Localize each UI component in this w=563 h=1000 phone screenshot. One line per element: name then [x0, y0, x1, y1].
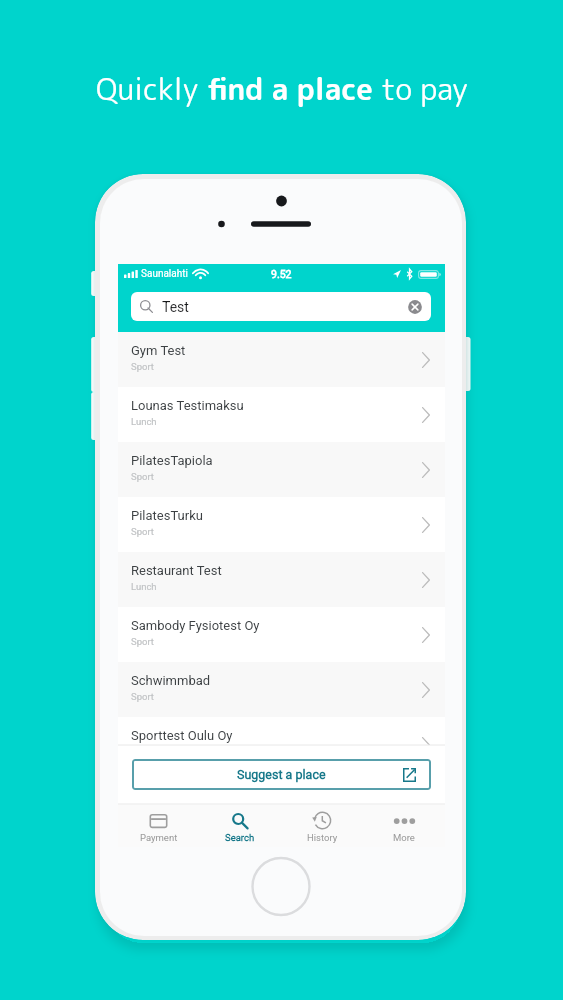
staticText: 9.52: [271, 268, 292, 280]
staticText: Test: [162, 299, 189, 315]
staticText: Sport: [131, 361, 154, 372]
staticText: Sambody Fysiotest Oy: [131, 618, 260, 633]
button[interactable]: More: [363, 805, 445, 847]
button[interactable]: Search: [199, 805, 281, 847]
staticText: Saunalahti: [141, 268, 188, 280]
staticText: to pay: [373, 68, 468, 109]
button[interactable]: Clear search: [407, 299, 423, 315]
button[interactable]: Lounas Testimaksu: [118, 387, 445, 442]
button[interactable]: Schwimmbad: [118, 662, 445, 717]
staticText: Gym Test: [131, 343, 186, 358]
staticText: PilatesTurku: [131, 508, 203, 523]
staticText: find a place: [207, 68, 373, 109]
staticText: Quickly: [96, 68, 207, 109]
staticText: Sport: [131, 691, 154, 702]
staticText: Payment: [140, 832, 178, 843]
staticText: Sport: [131, 471, 154, 482]
staticText: PilatesTapiola: [131, 453, 213, 468]
staticText: Sport: [131, 526, 154, 537]
button[interactable]: Sporttest Oulu Oy: [118, 717, 445, 745]
button[interactable]: Suggest a place: [132, 759, 431, 790]
staticText: Lunch: [131, 416, 157, 427]
button[interactable]: History: [281, 805, 363, 847]
staticText: Sporttest Oulu Oy: [131, 728, 233, 743]
staticText: Restaurant Test: [131, 563, 222, 578]
staticText: More: [393, 832, 415, 843]
button[interactable]: PilatesTapiola: [118, 442, 445, 497]
button[interactable]: Test: [131, 292, 431, 321]
staticText: Lunch: [131, 581, 157, 592]
button[interactable]: Payment: [118, 805, 199, 847]
staticText: History: [307, 832, 338, 843]
staticText: Search: [225, 832, 255, 843]
button[interactable]: PilatesTurku: [118, 497, 445, 552]
button[interactable]: Gym Test: [118, 332, 445, 387]
button[interactable]: Restaurant Test: [118, 552, 445, 607]
staticText: Schwimmbad: [131, 673, 211, 688]
staticText: Lounas Testimaksu: [131, 398, 244, 413]
staticText: Sport: [131, 636, 154, 647]
staticText: Suggest a place: [237, 767, 326, 782]
button[interactable]: Sambody Fysiotest Oy: [118, 607, 445, 662]
